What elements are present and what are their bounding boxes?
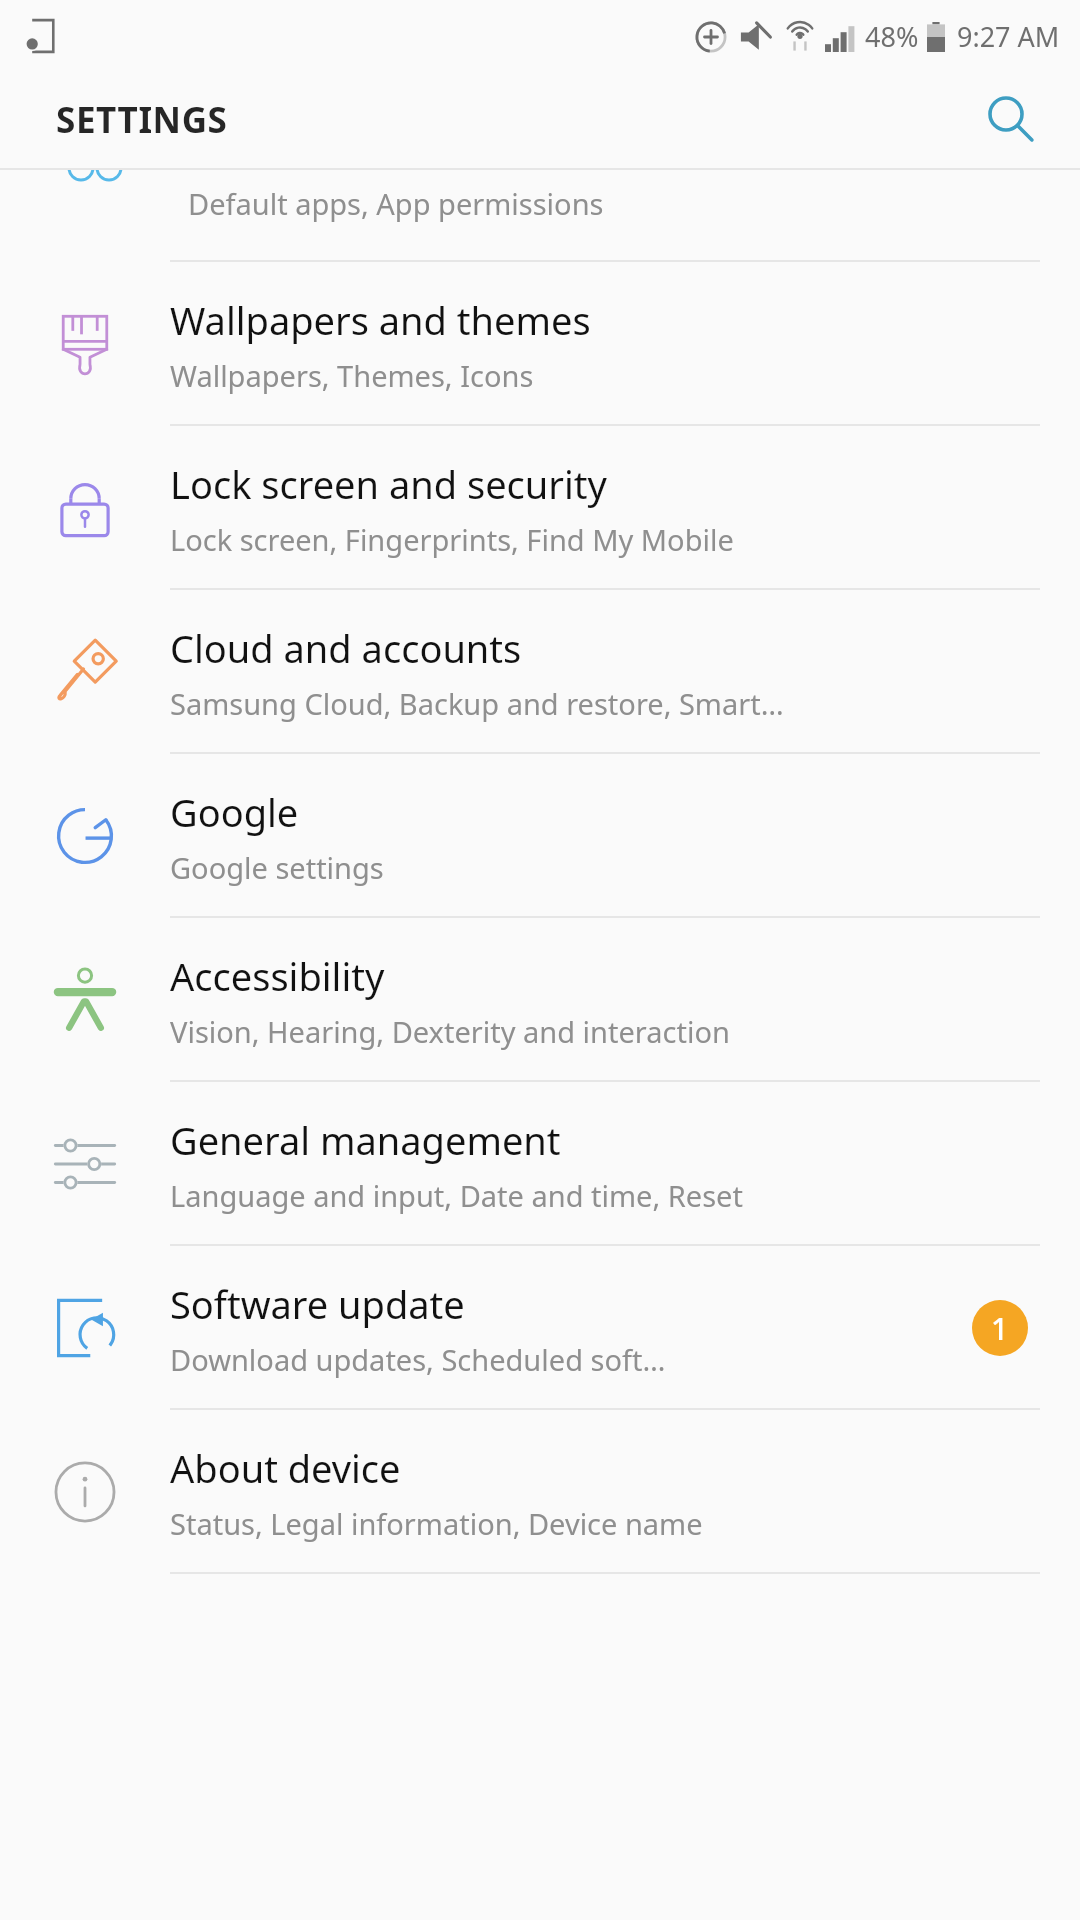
button[interactable]: Lock screen and security <box>0 426 1080 590</box>
button[interactable]: Wallpapers and themes <box>0 262 1080 426</box>
button[interactable]: Default apps, App permissions <box>0 170 1080 262</box>
button[interactable]: General management <box>0 1082 1080 1246</box>
staticText: Wallpapers and themes <box>170 294 591 346</box>
staticText: 9:27 AM <box>957 18 1060 55</box>
button[interactable]: Cloud and accounts <box>0 590 1080 754</box>
staticText: Google <box>170 786 299 838</box>
staticText: Cloud and accounts <box>170 622 522 674</box>
button[interactable]: Software update <box>0 1246 1080 1410</box>
staticText: Default apps, App permissions <box>188 184 604 223</box>
staticText: Lock screen and security <box>170 458 607 510</box>
staticText: Accessibility <box>170 950 385 1002</box>
button[interactable]: Google <box>0 754 1080 918</box>
staticText: About device <box>170 1442 401 1494</box>
staticText: Samsung Cloud, Backup and restore, Smart… <box>170 684 784 723</box>
staticText: Lock screen, Fingerprints, Find My Mobil… <box>170 520 734 559</box>
staticText: 1 <box>991 1308 1009 1349</box>
staticText: Software update <box>170 1278 465 1330</box>
staticText: SETTINGS <box>56 96 228 144</box>
staticText: Google settings <box>170 848 384 887</box>
staticText: Download updates, Scheduled soft… <box>170 1340 666 1379</box>
button[interactable]: Accessibility <box>0 918 1080 1082</box>
button[interactable]: Search <box>968 78 1052 162</box>
staticText: 48% <box>865 18 919 55</box>
staticText: Vision, Hearing, Dexterity and interacti… <box>170 1012 730 1051</box>
staticText: General management <box>170 1114 561 1166</box>
staticText: Language and input, Date and time, Reset <box>170 1176 743 1215</box>
staticText: Wallpapers, Themes, Icons <box>170 356 534 395</box>
button[interactable]: About device <box>0 1410 1080 1574</box>
staticText: Status, Legal information, Device name <box>170 1504 703 1543</box>
